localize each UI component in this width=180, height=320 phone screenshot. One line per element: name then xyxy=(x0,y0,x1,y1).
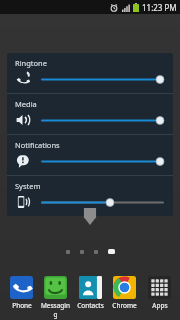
staticText: Messaging xyxy=(39,301,72,319)
button[interactable]: Media xyxy=(7,94,173,134)
button[interactable]: Ringtone xyxy=(7,53,173,93)
staticText: Contacts xyxy=(77,301,104,310)
button[interactable]: Messaging xyxy=(39,272,72,319)
button[interactable]: Phone xyxy=(5,272,38,310)
button[interactable]: Collapse volume panel xyxy=(82,208,98,225)
staticText: Chrome xyxy=(112,301,137,310)
button[interactable]: Contacts xyxy=(74,272,107,310)
button[interactable]: Apps xyxy=(143,272,176,310)
staticText: Phone xyxy=(12,301,32,310)
staticText: Notifications xyxy=(15,140,60,150)
staticText: Media xyxy=(15,99,37,109)
staticText: Ringtone xyxy=(15,58,47,68)
staticText: Apps xyxy=(152,301,168,310)
button[interactable]: Notifications xyxy=(7,135,173,175)
button[interactable]: Chrome xyxy=(108,272,141,310)
staticText: 11:23 PM xyxy=(142,2,177,13)
button[interactable]: System xyxy=(7,176,173,216)
staticText: System xyxy=(15,181,41,191)
